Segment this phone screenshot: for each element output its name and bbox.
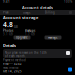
staticText: Billing (45, 11, 55, 14)
staticText: Your plan renews on the 14th (5, 51, 47, 54)
staticText: Upgrade (16, 36, 28, 39)
staticText: Next invoice (3, 66, 19, 69)
staticText: Backups (25, 29, 35, 32)
staticText: Payment method (3, 58, 26, 62)
staticText: Manage (48, 36, 58, 39)
button[interactable]: Payment method (0, 58, 75, 66)
staticText: 100% (64, 0, 72, 3)
staticText: of each month. (5, 54, 26, 58)
button[interactable]: Upgrade (13, 35, 30, 39)
staticText: Usage (23, 11, 31, 14)
staticText: Details (3, 43, 16, 48)
staticText: Oct 14, 2025 (3, 69, 22, 73)
staticText: Account details (22, 5, 53, 10)
staticText: 1.7 GB (25, 32, 35, 36)
button[interactable]: Manage (44, 35, 61, 39)
staticText: Plan (3, 11, 9, 14)
staticText: Visa ···· 4242 (3, 62, 22, 65)
staticText: 3.1 GB (3, 32, 13, 36)
staticText: 9:41 (3, 0, 10, 3)
button[interactable]: Next invoice (0, 66, 75, 73)
staticText: Photos (3, 29, 13, 32)
staticText: 4.8 (3, 20, 13, 29)
staticText: Account storage (3, 15, 38, 20)
staticText: GB (14, 25, 18, 29)
